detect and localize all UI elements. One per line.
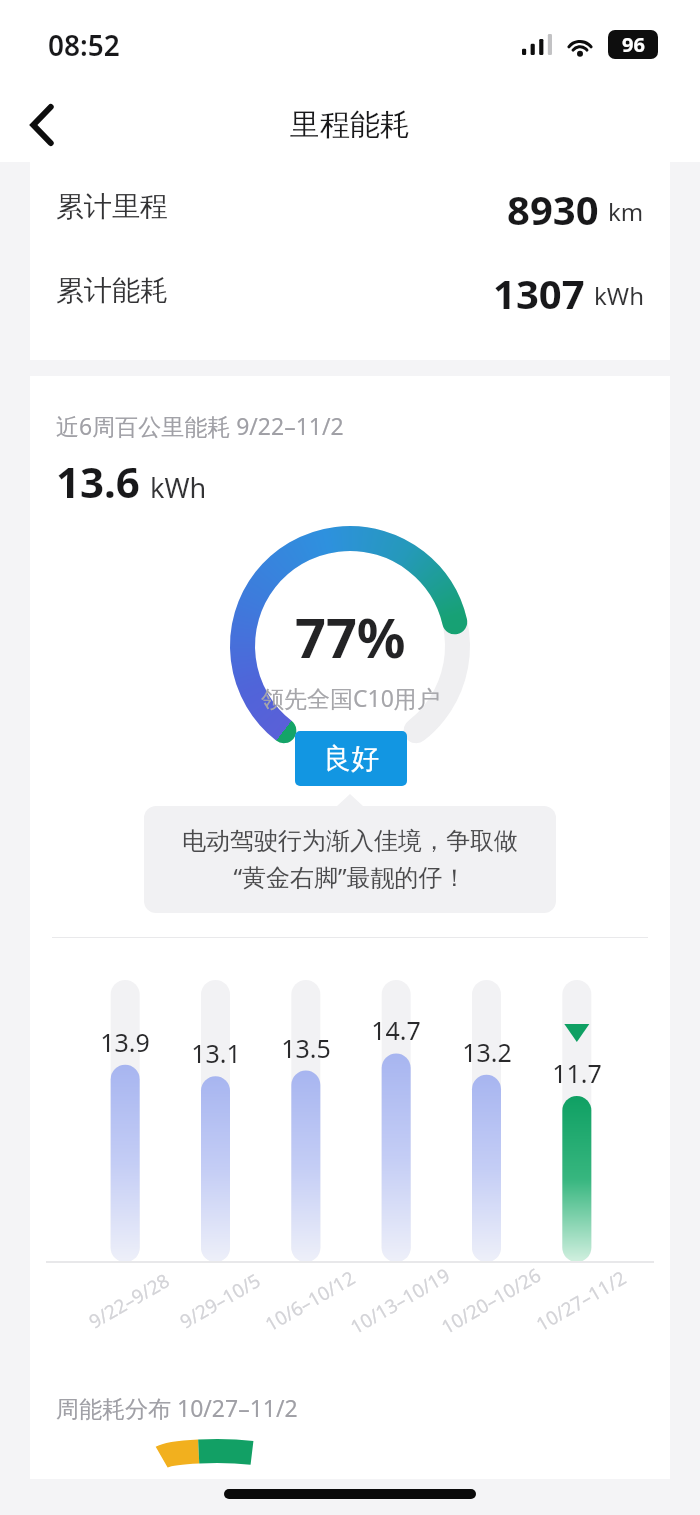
staticText: 累计能耗	[56, 273, 168, 308]
staticText: 13.5	[276, 1031, 336, 1065]
staticText: 9/29–10/5	[163, 1261, 277, 1341]
button[interactable]: 电动驾驶行为渐入佳境，争取做 “黄金右脚”最靓的仔！	[144, 806, 556, 913]
staticText: 电动驾驶行为渐入佳境，争取做 “黄金右脚”最靓的仔！	[182, 826, 518, 893]
staticText: 9/22–9/28	[72, 1261, 186, 1341]
button[interactable]: Back	[14, 96, 72, 154]
staticText: 10/20–10/26	[434, 1261, 548, 1341]
staticText: 领先全国C10用户	[261, 682, 440, 713]
staticText: kWh	[150, 469, 207, 506]
staticText: km	[608, 195, 644, 228]
button[interactable]: 良好	[295, 731, 407, 786]
staticText: 13.1	[186, 1036, 246, 1070]
staticText: 08:52	[48, 26, 120, 64]
staticText: 10/27–11/2	[524, 1261, 638, 1341]
staticText: kWh	[594, 279, 644, 312]
staticText: 10/6–10/12	[253, 1261, 367, 1341]
staticText: 11.7	[547, 1056, 607, 1090]
button[interactable]: 累计能耗	[56, 266, 644, 314]
staticText: 累计里程	[56, 189, 168, 224]
staticText: 8930	[507, 182, 599, 230]
staticText: 13.9	[95, 1025, 155, 1059]
staticText: 14.7	[366, 1013, 426, 1047]
staticText: 近6周百公里能耗 9/22–11/2	[56, 410, 344, 441]
staticText: 10/13–10/19	[343, 1261, 457, 1341]
staticText: 96	[622, 31, 645, 58]
staticText: 里程能耗	[290, 106, 410, 144]
button[interactable]: 累计里程	[56, 182, 644, 230]
staticText: 1307	[493, 266, 585, 314]
staticText: 13.2	[457, 1035, 517, 1069]
staticText: 良好	[323, 741, 379, 776]
staticText: 13.6	[56, 453, 140, 510]
staticText: 77%	[295, 600, 406, 674]
staticText: 周能耗分布 10/27–11/2	[56, 1392, 298, 1423]
